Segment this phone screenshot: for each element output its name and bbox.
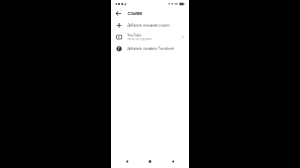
button[interactable]: Back <box>115 9 122 18</box>
staticText: Добавить внешнюю ссылку <box>127 24 170 27</box>
staticText: YouTube <box>127 34 141 37</box>
button[interactable]: Recent apps <box>121 156 134 166</box>
button[interactable]: Добавить внешнюю ссылку <box>111 19 189 31</box>
button[interactable]: YouTube <box>111 31 189 43</box>
button[interactable]: Back <box>166 156 179 166</box>
staticText: Ссылки <box>127 11 141 16</box>
staticText: Добавить профиль Facebook <box>127 47 174 50</box>
staticText: youtube.com/@gigihadid <box>127 38 151 40</box>
button[interactable]: Home <box>143 156 156 166</box>
button[interactable]: f <box>111 43 189 55</box>
staticText: f <box>118 46 120 51</box>
